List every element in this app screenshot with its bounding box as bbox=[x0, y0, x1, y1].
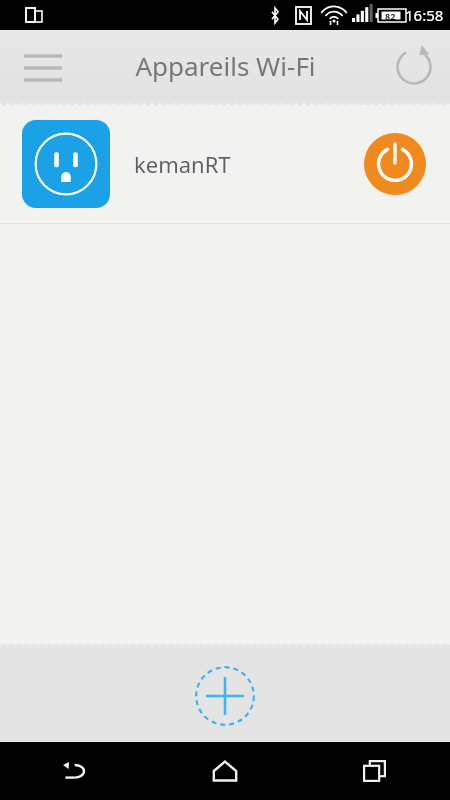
button[interactable]: Power toggle bbox=[364, 133, 426, 195]
staticText: 82 bbox=[385, 10, 396, 22]
button[interactable]: Recent apps bbox=[300, 742, 450, 800]
button[interactable]: Back bbox=[0, 742, 150, 800]
button[interactable]: Add device bbox=[189, 660, 261, 732]
button[interactable]: Refresh bbox=[386, 40, 442, 96]
staticText: 16:58 bbox=[405, 5, 444, 25]
button[interactable]: kemanRT bbox=[0, 105, 450, 223]
staticText: Appareils Wi-Fi bbox=[135, 48, 316, 83]
staticText: kemanRT bbox=[134, 149, 364, 179]
button[interactable]: Home bbox=[150, 742, 300, 800]
button[interactable]: Menu bbox=[12, 40, 74, 96]
